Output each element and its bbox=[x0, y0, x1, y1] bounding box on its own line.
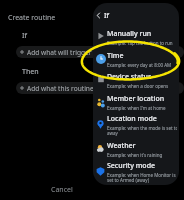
button[interactable]: Add what will trigger bbox=[16, 46, 184, 58]
button[interactable]: Member location bbox=[93, 92, 179, 112]
button[interactable]: Location mode bbox=[93, 112, 179, 138]
staticText: Example: when a door opens bbox=[107, 83, 169, 89]
staticText: Add what this routine bbox=[27, 84, 94, 93]
button[interactable]: Security mode bbox=[93, 160, 179, 185]
staticText: Device status bbox=[107, 72, 152, 82]
button[interactable]: Weather bbox=[93, 138, 179, 160]
staticText: Example: Tap the button to run bbox=[107, 40, 173, 46]
staticText: Example: when I'm at home bbox=[107, 105, 166, 111]
button[interactable]: Device status bbox=[93, 69, 179, 92]
staticText: Member location bbox=[107, 94, 165, 104]
staticText: Example: when Home Monitor is set to Arm… bbox=[107, 172, 176, 184]
staticText: Time bbox=[107, 51, 124, 61]
staticText: If bbox=[22, 31, 27, 41]
staticText: Manually run bbox=[107, 29, 152, 39]
staticText: Create routine bbox=[8, 13, 56, 23]
button[interactable]: Time bbox=[93, 49, 179, 69]
button[interactable]: Back bbox=[93, 10, 104, 21]
button[interactable]: Add what this routine bbox=[16, 82, 184, 94]
staticText: Example: when the mode is set to away bbox=[107, 125, 177, 137]
staticText: Location mode bbox=[107, 114, 157, 124]
staticText: Weather bbox=[107, 141, 136, 151]
staticText: Security mode bbox=[107, 161, 156, 171]
staticText: Then bbox=[22, 67, 39, 77]
staticText: Example: every day at 8:00 AM bbox=[107, 62, 172, 68]
staticText: Example: when it's raining bbox=[107, 152, 163, 158]
button[interactable]: Manually run bbox=[93, 25, 179, 49]
staticText: If bbox=[104, 11, 109, 21]
button[interactable]: Cancel bbox=[51, 185, 73, 195]
staticText: Add what will trigger bbox=[27, 48, 92, 57]
